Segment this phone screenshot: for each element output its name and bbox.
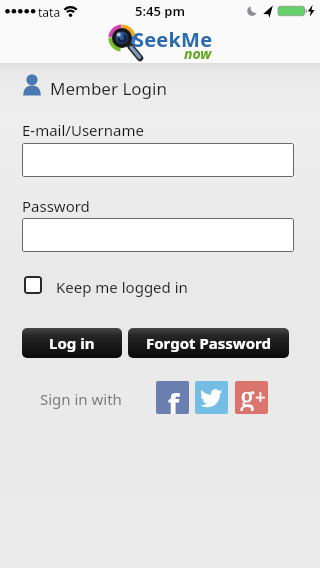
button[interactable] xyxy=(195,381,228,414)
staticText: SeekMe xyxy=(133,26,213,53)
staticText: + xyxy=(255,384,266,410)
staticText: Log in xyxy=(49,333,95,353)
button[interactable] xyxy=(22,218,294,252)
staticText: now xyxy=(184,44,212,63)
staticText: E-mail/Username xyxy=(22,120,144,140)
staticText: Sign in with xyxy=(40,389,122,409)
staticText: Member Login xyxy=(50,77,167,100)
staticText: 5:45 pm xyxy=(135,2,185,18)
staticText: tata xyxy=(38,4,61,20)
button[interactable] xyxy=(22,143,294,177)
button[interactable]: f xyxy=(156,381,189,414)
staticText: Forgot Password xyxy=(146,333,271,353)
staticText: Password xyxy=(22,196,90,216)
staticText: g xyxy=(240,381,255,411)
staticText: Keep me logged in xyxy=(56,277,188,297)
button[interactable] xyxy=(24,276,42,294)
button[interactable]: Log in xyxy=(22,328,122,358)
button[interactable]: g xyxy=(235,381,268,414)
button[interactable]: Forgot Password xyxy=(128,328,289,358)
staticText: f xyxy=(168,384,180,414)
